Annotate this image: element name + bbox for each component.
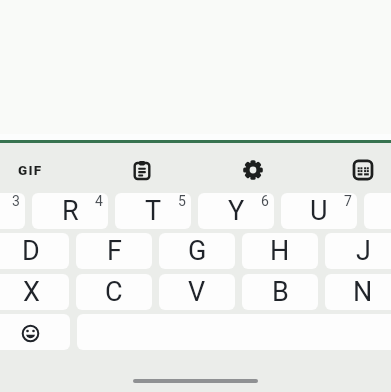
button[interactable]: J — [325, 233, 391, 269]
button[interactable]: R — [32, 193, 108, 229]
button[interactable]: GIF — [0, 146, 74, 193]
button[interactable]: U — [281, 193, 357, 229]
staticText: B — [272, 276, 289, 308]
button[interactable]: C — [76, 274, 152, 310]
staticText: 5 — [178, 193, 186, 209]
staticText: D — [22, 235, 40, 267]
staticText: 3 — [12, 193, 20, 209]
button[interactable]: F — [76, 233, 152, 269]
button[interactable] — [133, 379, 258, 383]
staticText: V — [188, 276, 206, 308]
staticText: J — [356, 235, 371, 267]
staticText: R — [62, 195, 79, 227]
button[interactable] — [0, 314, 70, 350]
button[interactable]: V — [159, 274, 235, 310]
button[interactable] — [326, 146, 391, 193]
button[interactable]: 3 — [0, 193, 25, 229]
button[interactable]: T — [115, 193, 191, 229]
staticText: 6 — [261, 193, 269, 209]
staticText: G — [188, 235, 207, 267]
button[interactable]: Y — [198, 193, 274, 229]
staticText: 4 — [95, 193, 103, 209]
staticText: GIF — [18, 162, 43, 178]
staticText: C — [105, 276, 123, 308]
button[interactable] — [208, 146, 297, 193]
staticText: Y — [228, 195, 245, 227]
button[interactable]: G — [159, 233, 235, 269]
staticText: 7 — [344, 193, 352, 209]
staticText: T — [145, 195, 162, 227]
button[interactable]: N — [325, 274, 391, 310]
staticText: U — [310, 195, 328, 227]
button[interactable]: B — [242, 274, 318, 310]
button[interactable] — [97, 146, 186, 193]
staticText: X — [23, 276, 40, 308]
staticText: F — [107, 235, 122, 267]
button[interactable]: H — [242, 233, 318, 269]
staticText: H — [270, 235, 290, 267]
button[interactable]: D — [0, 233, 69, 269]
staticText: N — [353, 276, 373, 308]
button[interactable]: X — [0, 274, 69, 310]
